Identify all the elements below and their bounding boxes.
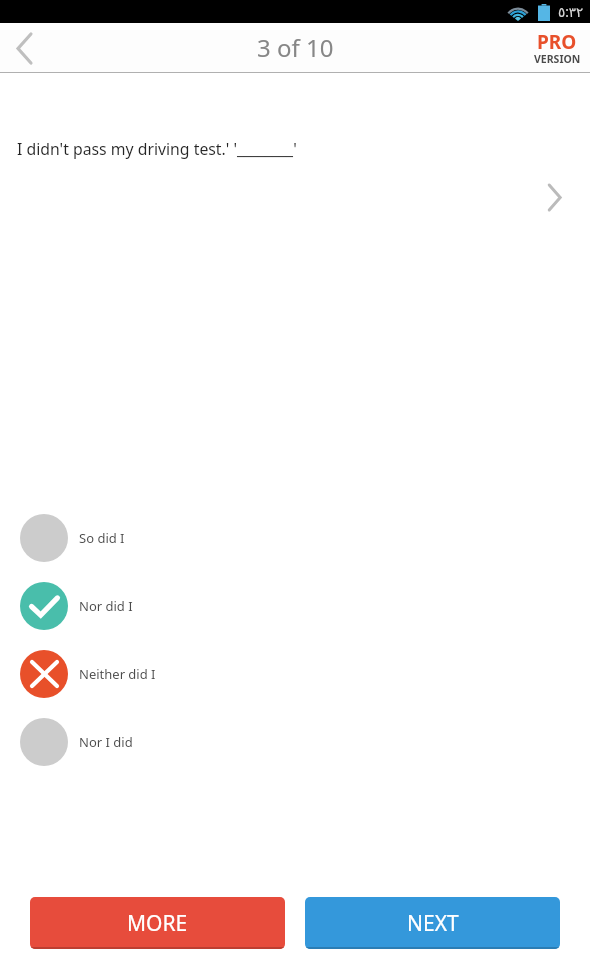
staticText: Nor I did <box>79 733 133 751</box>
staticText: MORE <box>127 909 188 938</box>
button[interactable]: PRO <box>533 31 581 64</box>
staticText: NEXT <box>407 909 459 938</box>
button[interactable]: MORE <box>30 897 285 949</box>
button[interactable]: Back <box>0 23 52 72</box>
button[interactable]: Neither did I <box>0 640 590 708</box>
staticText: 3 of 10 <box>257 31 334 64</box>
staticText: Nor did I <box>79 597 133 615</box>
button[interactable]: So did I <box>0 504 590 572</box>
staticText: ٥:٣٢ <box>558 3 584 21</box>
staticText: I didn't pass my driving test.' '_______… <box>17 138 297 160</box>
staticText: PRO <box>537 29 577 55</box>
button[interactable]: Nor I did <box>0 708 590 776</box>
button[interactable]: Next question <box>532 175 576 219</box>
staticText: VERSION <box>534 52 581 66</box>
button[interactable]: Nor did I <box>0 572 590 640</box>
staticText: Neither did I <box>79 665 156 683</box>
button[interactable]: NEXT <box>305 897 560 949</box>
staticText: So did I <box>79 529 125 547</box>
